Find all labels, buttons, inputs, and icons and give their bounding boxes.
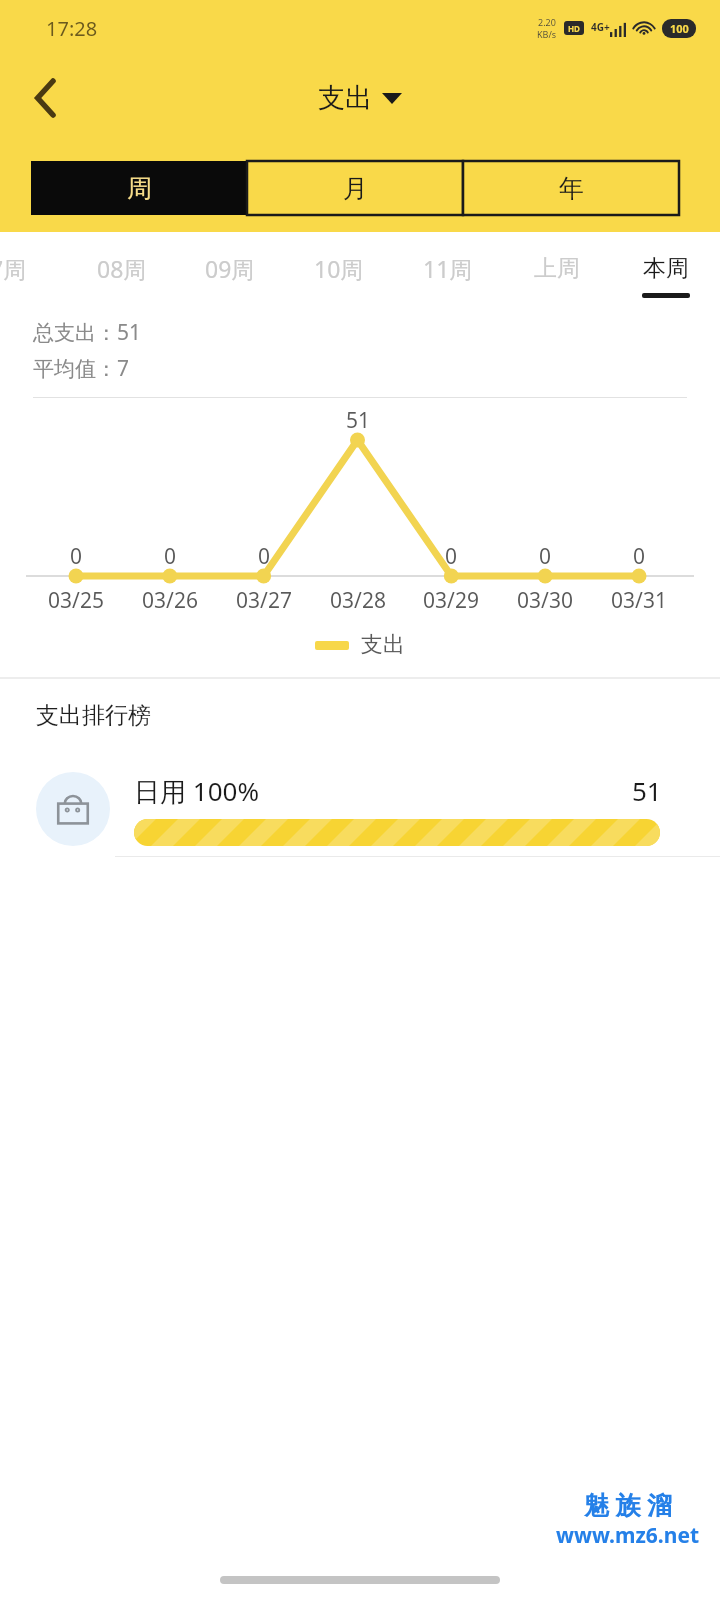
staticText: 2.20	[538, 16, 556, 28]
staticText: 0	[150, 542, 190, 571]
staticText: 03/27	[219, 586, 309, 615]
button[interactable]: 年	[463, 161, 679, 215]
staticText: 03/25	[31, 586, 121, 615]
button[interactable]: 09周	[176, 232, 284, 304]
staticText: 7周	[0, 253, 27, 284]
staticText: 本周	[643, 254, 689, 283]
staticText: 51	[632, 773, 662, 808]
button[interactable]: Back	[18, 70, 74, 126]
staticText: 0	[619, 542, 659, 571]
staticText: 03/30	[500, 586, 590, 615]
staticText: 0	[244, 542, 284, 571]
staticText: 4G+	[591, 20, 610, 34]
staticText: www.mz6.net	[556, 1521, 700, 1550]
button[interactable]: 支出	[318, 81, 402, 115]
button[interactable]: 08周	[68, 232, 176, 304]
button[interactable]: 周	[31, 161, 247, 215]
staticText: 17:28	[46, 15, 98, 42]
staticText: 51	[338, 406, 378, 435]
staticText: 11周	[423, 253, 473, 284]
button[interactable]: 7周	[0, 232, 68, 304]
staticText: 魅 族 溜	[584, 1487, 673, 1521]
staticText: 周	[127, 173, 152, 204]
staticText: 10周	[314, 253, 364, 284]
staticText: 08周	[97, 253, 147, 284]
staticText: HD	[568, 23, 580, 34]
staticText: 支出	[361, 631, 405, 659]
staticText: 日用 100%	[134, 773, 259, 809]
staticText: 月	[343, 173, 368, 204]
button[interactable]: 10周	[284, 232, 393, 304]
staticText: 03/28	[313, 586, 403, 615]
staticText: 年	[559, 173, 584, 204]
staticText: 100	[670, 21, 689, 36]
staticText: 03/31	[594, 586, 684, 615]
staticText: 支出排行榜	[36, 701, 151, 730]
button[interactable]: 11周	[393, 232, 502, 304]
button[interactable]: 本周	[611, 232, 720, 304]
staticText: 03/26	[125, 586, 215, 615]
staticText: 总支出：51	[33, 318, 142, 347]
staticText: 上周	[534, 254, 580, 283]
staticText: 09周	[205, 253, 255, 284]
staticText: 03/29	[406, 586, 496, 615]
staticText: 0	[56, 542, 96, 571]
button[interactable]: 上周	[502, 232, 611, 304]
button[interactable]: 月	[247, 161, 463, 215]
button[interactable]: 日用 100%	[0, 762, 720, 856]
staticText: KB/s	[537, 28, 557, 40]
staticText: 支出	[318, 81, 372, 115]
staticText: 0	[431, 542, 471, 571]
staticText: 平均值：7	[33, 354, 130, 383]
staticText: 0	[525, 542, 565, 571]
